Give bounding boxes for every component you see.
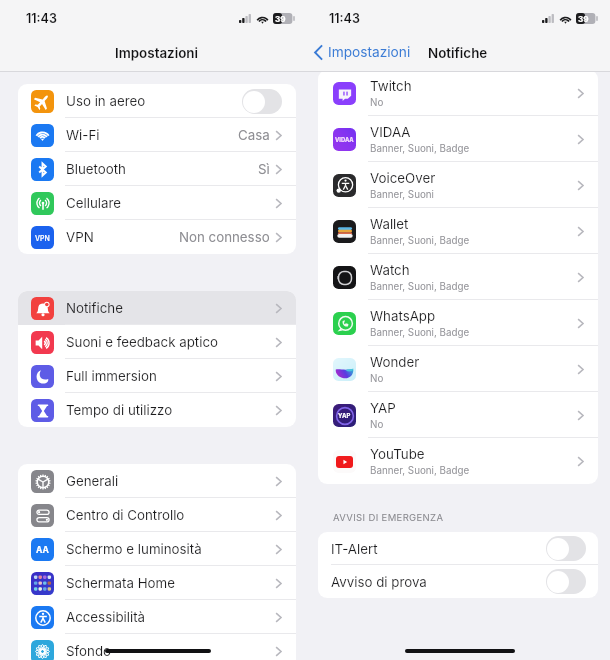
staticText: WhatsApp: [370, 308, 436, 324]
staticText: Centro di Controllo: [66, 507, 275, 523]
staticText: AVVISI DI EMERGENZA: [333, 512, 444, 523]
staticText: VPN: [66, 229, 179, 245]
staticText: Suoni e feedback aptico: [66, 334, 275, 350]
staticText: No: [370, 373, 384, 385]
staticText: Non connesso: [179, 229, 270, 245]
staticText: 39: [578, 14, 589, 24]
staticText: 39: [275, 14, 286, 24]
staticText: Sfondo: [66, 643, 275, 659]
staticText: Generali: [66, 473, 275, 489]
staticText: YAP: [338, 412, 351, 419]
staticText: Sì: [258, 161, 270, 177]
button[interactable]: Suoni e feedback aptico: [18, 325, 296, 359]
staticText: Impostazioni: [115, 45, 199, 61]
staticText: YAP: [370, 400, 396, 416]
staticText: VPN: [35, 234, 50, 242]
button[interactable]: VPN: [18, 220, 296, 254]
button[interactable]: Uso in aereo: [18, 84, 296, 118]
staticText: Wi-Fi: [66, 127, 238, 143]
staticText: Banner, Suoni, Badge: [370, 281, 470, 293]
staticText: IT-Alert: [331, 541, 546, 557]
staticText: Twitch: [370, 78, 412, 94]
staticText: VIDAA: [370, 124, 411, 140]
button[interactable]: Impostazioni: [314, 44, 411, 61]
staticText: 11:43: [329, 11, 360, 26]
staticText: Schermo e luminosità: [66, 541, 275, 557]
staticText: Casa: [238, 127, 270, 143]
staticText: Wallet: [370, 216, 409, 232]
button[interactable]: Full immersion: [18, 359, 296, 393]
staticText: Notifiche: [66, 300, 275, 316]
button[interactable]: Wallet: [318, 208, 598, 254]
button[interactable]: Attiva/disattiva: [242, 89, 282, 114]
staticText: 11:43: [26, 11, 57, 26]
button[interactable]: Centro di Controllo: [18, 498, 296, 532]
staticText: No: [370, 97, 384, 109]
staticText: Banner, Suoni, Badge: [370, 327, 470, 339]
button[interactable]: Bluetooth: [18, 152, 296, 186]
button[interactable]: WhatsApp: [318, 300, 598, 346]
button[interactable]: Accessibilità: [18, 600, 296, 634]
staticText: Full immersion: [66, 368, 275, 384]
staticText: AA: [36, 545, 49, 555]
button[interactable]: AA: [18, 532, 296, 566]
staticText: VIDAA: [335, 136, 354, 143]
button[interactable]: Notifiche: [18, 291, 296, 325]
button[interactable]: YouTube: [318, 438, 598, 484]
staticText: Banner, Suoni, Badge: [370, 143, 470, 155]
staticText: Banner, Suoni, Badge: [370, 235, 470, 247]
staticText: Notifiche: [428, 45, 488, 61]
staticText: Uso in aereo: [66, 93, 242, 109]
staticText: YouTube: [370, 446, 425, 462]
staticText: Bluetooth: [66, 161, 258, 177]
button[interactable]: VoiceOver: [318, 162, 598, 208]
button[interactable]: Schermata Home: [18, 566, 296, 600]
button[interactable]: Sfondo: [18, 634, 296, 660]
button[interactable]: Attiva/disattiva: [546, 569, 586, 594]
button[interactable]: Wonder: [318, 346, 598, 392]
staticText: No: [370, 419, 384, 431]
button[interactable]: Cellulare: [18, 186, 296, 220]
button[interactable]: YAP: [318, 392, 598, 438]
button[interactable]: VIDAA: [318, 116, 598, 162]
staticText: Schermata Home: [66, 575, 275, 591]
staticText: Tempo di utilizzo: [66, 402, 275, 418]
staticText: Watch: [370, 262, 410, 278]
button[interactable]: IT-Alert: [318, 532, 598, 565]
staticText: Accessibilità: [66, 609, 275, 625]
staticText: Wonder: [370, 354, 420, 370]
button[interactable]: Attiva/disattiva: [546, 536, 586, 561]
staticText: Cellulare: [66, 195, 275, 211]
staticText: Avviso di prova: [331, 574, 546, 590]
button[interactable]: Watch: [318, 254, 598, 300]
staticText: VoiceOver: [370, 170, 436, 186]
button[interactable]: Twitch: [318, 70, 598, 116]
staticText: Impostazioni: [328, 44, 411, 61]
button[interactable]: Generali: [18, 464, 296, 498]
staticText: Banner, Suoni, Badge: [370, 465, 470, 477]
button[interactable]: Tempo di utilizzo: [18, 393, 296, 427]
staticText: Banner, Suoni: [370, 189, 434, 201]
button[interactable]: Avviso di prova: [318, 565, 598, 598]
button[interactable]: Wi-Fi: [18, 118, 296, 152]
